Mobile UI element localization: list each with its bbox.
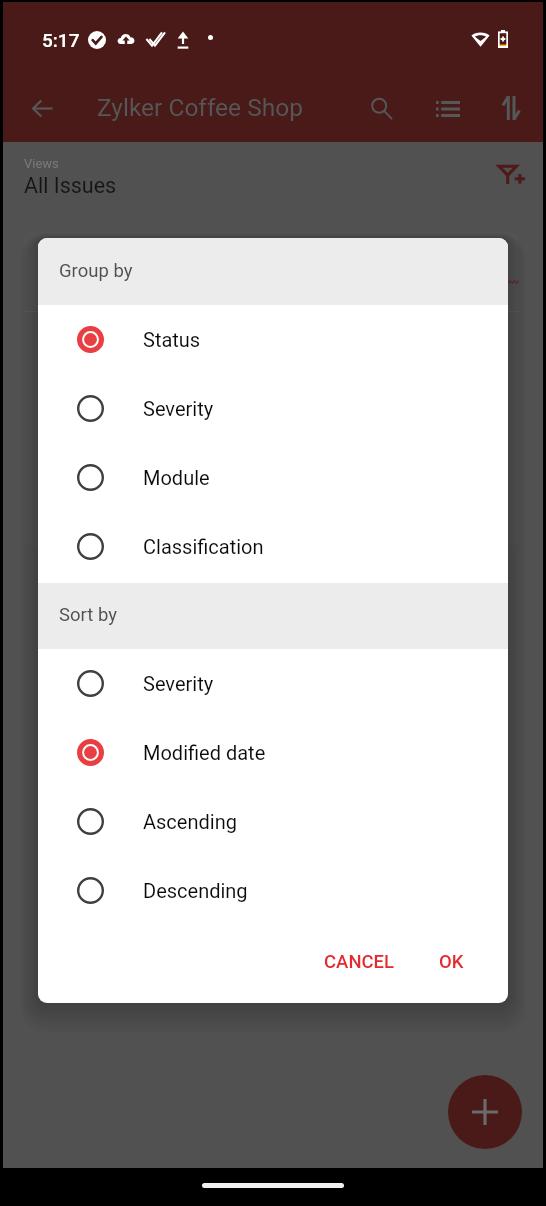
staticText: 5:17 (42, 29, 80, 51)
button[interactable]: Classification (38, 512, 508, 581)
staticText: OK (439, 951, 464, 973)
button[interactable]: List options (425, 85, 471, 131)
button[interactable]: Navigate back (19, 85, 65, 131)
button[interactable]: Create issue (448, 1075, 522, 1149)
button[interactable]: Search (358, 85, 404, 131)
staticText: Severity (143, 397, 214, 420)
button[interactable]: Module (38, 443, 508, 512)
staticText: Views (24, 156, 59, 171)
staticText: Descending (143, 879, 248, 902)
button[interactable]: Add filter (490, 153, 532, 195)
button[interactable]: OK (423, 939, 480, 985)
button[interactable]: Sort (488, 85, 534, 131)
staticText: Modified date (143, 741, 266, 764)
staticText: Classification (143, 535, 264, 558)
button[interactable]: Ascending (38, 787, 508, 856)
button[interactable]: Status (38, 305, 508, 374)
staticText: Module (143, 466, 210, 489)
staticText: CANCEL (324, 951, 395, 973)
button[interactable]: Descending (38, 856, 508, 925)
button[interactable]: Severity (38, 649, 508, 718)
button[interactable]: CANCEL (308, 939, 411, 985)
staticText: Sort by (59, 604, 117, 626)
staticText: Roaster calibration drifting, beans burn… (42, 249, 456, 274)
staticText: Ascending (143, 810, 237, 833)
staticText: Zylker Coffee Shop (97, 93, 303, 122)
staticText: Severity (143, 672, 214, 695)
button[interactable]: Modified date (38, 718, 508, 787)
staticText: Status (143, 328, 201, 351)
staticText: All Issues (24, 173, 117, 198)
button[interactable]: Roaster calibration drifting, beans burn… (24, 232, 519, 546)
staticText: Group by (59, 260, 133, 282)
button[interactable]: Severity (38, 374, 508, 443)
